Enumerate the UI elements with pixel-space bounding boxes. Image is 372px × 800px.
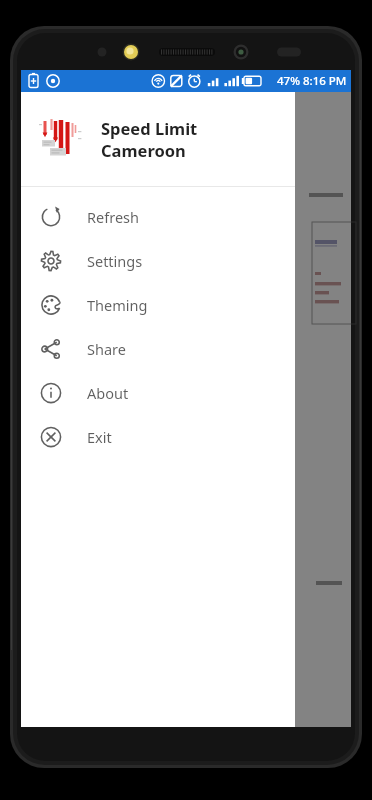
staticText: Share [87,339,126,359]
button[interactable]: Exit [21,415,295,459]
button[interactable]: Theming [21,283,295,327]
staticText: About [87,383,129,403]
staticText: Settings [87,251,143,271]
staticText: Refresh [87,207,139,227]
staticText: Exit [87,427,112,447]
button[interactable]: Settings [21,239,295,283]
button[interactable]: Speed Limit Cameroon [21,92,295,186]
button[interactable]: About [21,371,295,415]
button[interactable]: Refresh [21,195,295,239]
button[interactable]: Share [21,327,295,371]
staticText: 47% 8:16 PM [277,73,347,89]
staticText: Theming [87,295,148,315]
staticText: Speed Limit Cameroon [101,117,285,161]
